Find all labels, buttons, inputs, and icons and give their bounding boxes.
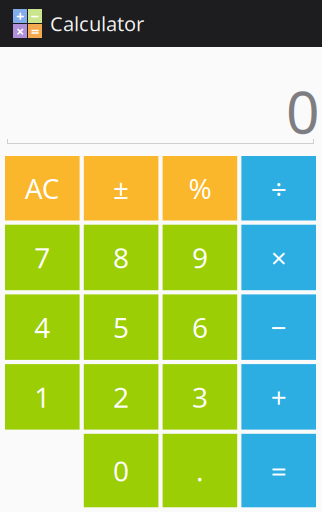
- staticText: Calculator: [50, 10, 144, 37]
- staticText: .: [196, 452, 204, 489]
- staticText: %: [188, 170, 211, 207]
- button[interactable]: Plus: [241, 364, 316, 430]
- staticText: −: [30, 6, 39, 26]
- button[interactable]: 3: [163, 364, 237, 430]
- button[interactable]: All clear: [5, 156, 80, 220]
- staticText: 8: [113, 239, 129, 276]
- staticText: 9: [192, 239, 208, 276]
- button[interactable]: Minus: [241, 294, 316, 360]
- staticText: 6: [192, 309, 208, 346]
- button[interactable]: 8: [84, 225, 158, 290]
- button[interactable]: Calculator app icon: [13, 9, 42, 38]
- staticText: 0: [286, 72, 320, 150]
- button[interactable]: 9: [163, 225, 237, 290]
- button[interactable]: 4: [5, 294, 80, 360]
- staticText: 1: [34, 378, 50, 415]
- button[interactable]: Divide: [241, 156, 316, 220]
- staticText: 3: [192, 378, 208, 415]
- button[interactable]: Percent: [163, 156, 237, 220]
- staticText: =: [31, 21, 39, 41]
- staticText: 7: [34, 239, 50, 276]
- staticText: +: [271, 378, 287, 415]
- staticText: 4: [34, 309, 50, 346]
- staticText: ×: [16, 21, 24, 41]
- staticText: ×: [271, 239, 287, 276]
- button[interactable]: 0: [84, 434, 158, 507]
- staticText: +: [16, 6, 24, 26]
- staticText: ±: [113, 170, 129, 207]
- staticText: AC: [25, 170, 60, 207]
- staticText: 2: [113, 378, 129, 415]
- button[interactable]: 6: [163, 294, 237, 360]
- button[interactable]: Decimal point: [163, 434, 237, 507]
- staticText: 0: [113, 452, 129, 489]
- button[interactable]: 1: [5, 364, 80, 430]
- button[interactable]: 2: [84, 364, 158, 430]
- button[interactable]: Plus minus: [84, 156, 158, 220]
- button[interactable]: Equals: [241, 434, 316, 507]
- staticText: =: [271, 452, 287, 489]
- button[interactable]: 5: [84, 294, 158, 360]
- button[interactable]: 7: [5, 225, 80, 290]
- button[interactable]: Multiply: [241, 225, 316, 290]
- staticText: −: [271, 309, 287, 346]
- staticText: 5: [113, 309, 129, 346]
- staticText: ÷: [271, 170, 287, 207]
